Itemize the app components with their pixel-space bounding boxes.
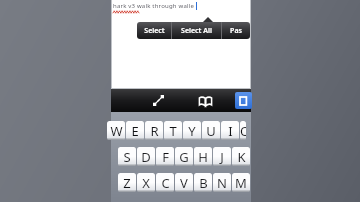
button[interactable]: Pas: [222, 22, 250, 39]
button[interactable]: C: [156, 173, 174, 192]
staticText: I: [228, 122, 233, 140]
staticText: T: [169, 122, 177, 140]
button[interactable]: B: [194, 173, 212, 192]
button[interactable]: H: [194, 147, 212, 166]
staticText: N: [217, 174, 227, 192]
staticText: U: [206, 122, 216, 140]
staticText: R: [150, 122, 159, 140]
button[interactable]: N: [213, 173, 231, 192]
button[interactable]: G: [175, 147, 193, 166]
button[interactable]: Dictionary: [197, 93, 213, 109]
button[interactable]: Select All: [172, 22, 221, 39]
button[interactable]: I: [221, 121, 239, 140]
button[interactable]: T: [164, 121, 182, 140]
button[interactable]: U: [202, 121, 220, 140]
button[interactable]: R: [145, 121, 163, 140]
staticText: Select All: [181, 26, 212, 36]
button[interactable]: J: [213, 147, 231, 166]
staticText: hark v3 walk through walle: [113, 2, 195, 10]
button[interactable]: W: [107, 121, 125, 140]
button[interactable]: S: [118, 147, 136, 166]
staticText: S: [123, 148, 131, 166]
staticText: M: [235, 174, 247, 192]
button[interactable]: X: [137, 173, 155, 192]
staticText: V: [180, 174, 188, 192]
button[interactable]: E: [126, 121, 144, 140]
staticText: G: [179, 148, 189, 166]
button[interactable]: V: [175, 173, 193, 192]
button[interactable]: Select: [137, 22, 171, 39]
button[interactable]: Z: [118, 173, 136, 192]
button[interactable]: F: [156, 147, 174, 166]
button[interactable]: D: [137, 147, 155, 166]
staticText: Pas: [230, 26, 242, 36]
staticText: H: [198, 148, 208, 166]
button[interactable]: M: [232, 173, 250, 192]
button[interactable]: Y: [183, 121, 201, 140]
staticText: B: [199, 174, 208, 192]
staticText: F: [162, 148, 169, 166]
staticText: X: [142, 174, 150, 192]
staticText: J: [220, 148, 224, 166]
staticText: Z: [123, 174, 131, 192]
staticText: Select: [144, 26, 165, 36]
staticText: Y: [188, 122, 196, 140]
button[interactable]: O: [240, 121, 246, 140]
staticText: E: [131, 122, 139, 140]
staticText: K: [237, 148, 246, 166]
staticText: O: [240, 122, 246, 140]
button[interactable]: K: [232, 147, 250, 166]
staticText: W: [110, 122, 123, 140]
button[interactable]: Done: [235, 92, 252, 109]
button[interactable]: Expand: [151, 93, 166, 108]
staticText: D: [141, 148, 151, 166]
staticText: C: [161, 174, 170, 192]
